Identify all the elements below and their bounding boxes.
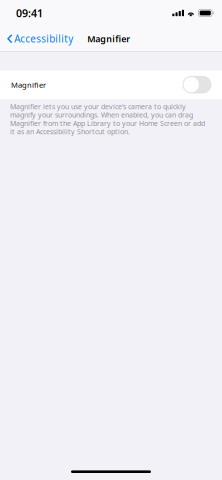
button[interactable]: Accessibility: [0, 27, 79, 50]
button[interactable]: Magnifier: [0, 70, 222, 99]
staticText: Magnifier: [11, 79, 46, 90]
staticText: Magnifier: [87, 33, 130, 45]
staticText: Accessibility: [14, 32, 73, 45]
staticText: Magnifier lets you use your device's cam…: [10, 102, 205, 136]
staticText: 09:41: [16, 6, 43, 20]
